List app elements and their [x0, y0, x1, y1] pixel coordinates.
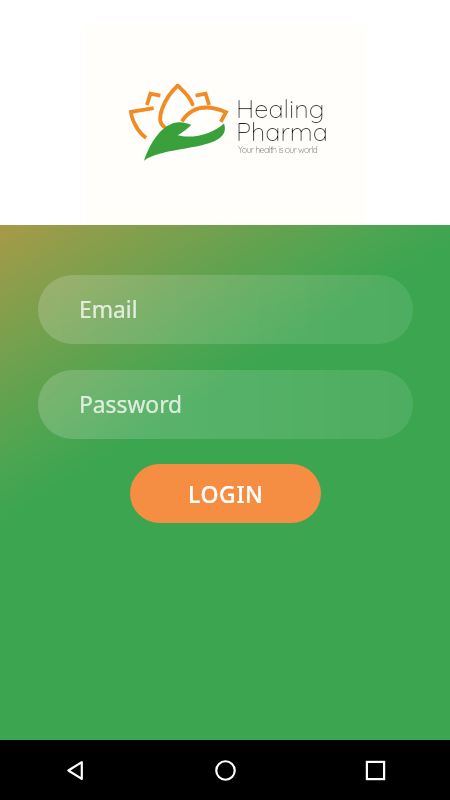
button[interactable]: Email — [38, 275, 413, 344]
staticText: LOGIN — [188, 478, 264, 509]
staticText: Healing — [236, 93, 325, 125]
staticText: Your health is our world — [238, 144, 318, 155]
button[interactable]: Back — [52, 747, 98, 793]
button[interactable]: Recent apps — [352, 747, 398, 793]
staticText: Email — [79, 294, 138, 325]
staticText: Password — [79, 389, 183, 420]
staticText: Pharma — [236, 116, 328, 148]
button[interactable]: Password — [38, 370, 413, 439]
button[interactable]: Home — [202, 747, 248, 793]
button[interactable]: LOGIN — [130, 464, 321, 523]
